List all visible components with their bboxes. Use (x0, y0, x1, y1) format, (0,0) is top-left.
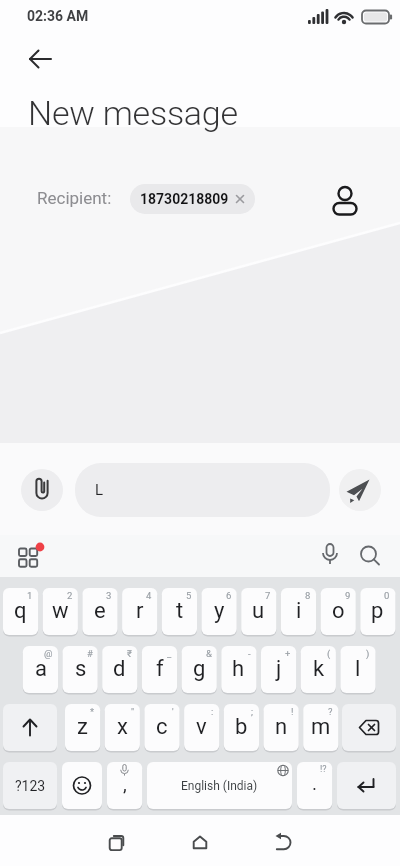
button[interactable]: L (75, 463, 330, 517)
button[interactable]: h (221, 646, 256, 693)
button[interactable] (21, 469, 63, 511)
staticText: u (252, 598, 265, 624)
button[interactable]: k (301, 646, 336, 693)
staticText: 3 (106, 590, 112, 601)
staticText: New message (28, 93, 238, 133)
button[interactable] (85, 820, 149, 864)
button[interactable] (342, 704, 396, 751)
staticText: _ (167, 648, 172, 659)
staticText: !? (320, 764, 327, 775)
staticText: L (95, 481, 104, 499)
staticText: n (275, 714, 288, 740)
button[interactable]: c (144, 704, 179, 751)
staticText: ( (327, 648, 331, 659)
button[interactable] (251, 820, 315, 864)
button[interactable] (352, 540, 390, 574)
staticText: + (285, 648, 291, 659)
staticText: l (355, 656, 361, 682)
staticText: p (371, 598, 384, 624)
button[interactable] (3, 704, 57, 751)
button[interactable] (10, 540, 50, 574)
staticText: 8 (305, 590, 311, 601)
staticText: m (311, 714, 331, 740)
staticText: , (123, 773, 127, 795)
button[interactable]: j (261, 646, 296, 693)
button[interactable]: b (224, 704, 259, 751)
button[interactable] (18, 40, 62, 76)
button[interactable]: i (281, 588, 316, 635)
staticText: 4 (146, 590, 152, 601)
button[interactable]: ?123 (3, 762, 57, 809)
button[interactable]: f (142, 646, 177, 693)
button[interactable] (62, 762, 102, 809)
button[interactable]: English (India) (147, 762, 292, 809)
button[interactable]: r (122, 588, 157, 635)
button[interactable]: y (202, 588, 237, 635)
button[interactable]: o (321, 588, 356, 635)
staticText: : (211, 706, 214, 717)
staticText: g (193, 656, 206, 682)
staticText: English (India) (181, 779, 258, 793)
button[interactable]: s (63, 646, 98, 693)
staticText: i (296, 598, 302, 624)
button[interactable]: n (264, 704, 299, 751)
button[interactable] (327, 180, 365, 218)
staticText: Recipient: (37, 188, 112, 208)
staticText: 0 (384, 590, 390, 601)
staticText: v (196, 714, 207, 740)
staticText: - (248, 648, 251, 659)
button[interactable]: m (303, 704, 338, 751)
staticText: & (206, 648, 212, 659)
staticText: q (14, 598, 27, 624)
button[interactable]: z (65, 704, 100, 751)
staticText: h (232, 656, 245, 682)
staticText: a (35, 656, 47, 682)
staticText: ) (366, 648, 370, 659)
button[interactable]: q (3, 588, 38, 635)
staticText: e (94, 598, 106, 624)
staticText: ! (291, 706, 294, 717)
button[interactable]: a (23, 646, 58, 693)
button[interactable]: x (105, 704, 140, 751)
staticText: * (90, 706, 95, 717)
button[interactable]: u (241, 588, 276, 635)
button[interactable] (339, 469, 381, 511)
staticText: s (75, 656, 87, 682)
staticText: . (312, 772, 318, 794)
staticText: 5 (186, 590, 192, 601)
staticText: ?123 (15, 778, 46, 794)
button[interactable]: w (43, 588, 78, 635)
button[interactable] (168, 820, 232, 864)
staticText: ; (251, 706, 254, 717)
staticText: ? (328, 706, 333, 717)
staticText: 2 (67, 590, 73, 601)
staticText: 6 (226, 590, 232, 601)
staticText: x (117, 714, 128, 740)
staticText: 18730218809 (140, 191, 229, 207)
button[interactable]: 18730218809 (130, 184, 255, 214)
button[interactable]: , (107, 762, 142, 809)
staticText: f (156, 656, 164, 682)
button[interactable]: t (162, 588, 197, 635)
button[interactable]: l (340, 646, 375, 693)
button[interactable]: d (102, 646, 137, 693)
staticText: t (176, 598, 184, 624)
button[interactable]: g (182, 646, 217, 693)
staticText: c (156, 714, 168, 740)
button[interactable] (337, 762, 396, 809)
staticText: # (87, 648, 93, 659)
staticText: 1 (27, 590, 33, 601)
button[interactable]: e (82, 588, 117, 635)
staticText: @ (44, 648, 53, 659)
button[interactable] (312, 540, 348, 574)
staticText: y (214, 598, 225, 624)
button[interactable]: v (184, 704, 219, 751)
button[interactable]: . (297, 762, 332, 809)
staticText: b (235, 714, 248, 740)
button[interactable]: p (360, 588, 395, 635)
staticText: k (313, 656, 325, 682)
staticText: j (276, 656, 282, 682)
staticText: z (77, 714, 88, 740)
staticText: w (52, 598, 69, 624)
staticText: " (131, 706, 135, 717)
